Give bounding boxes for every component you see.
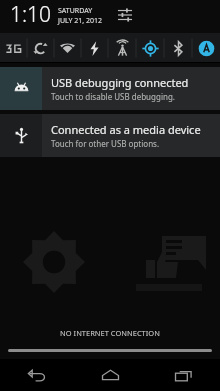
staticText: 1:10: [10, 0, 52, 29]
button[interactable]: USB debugging: [0, 67, 220, 110]
button[interactable]: USB connection: [0, 114, 220, 157]
button[interactable]: Auto rotate: [192, 33, 220, 63]
staticText: USB debugging connected: [51, 75, 189, 90]
button[interactable]: Sync: [27, 33, 54, 63]
button[interactable]: Recent apps: [147, 359, 220, 391]
staticText: JULY 21, 2012: [58, 16, 102, 26]
staticText: Touch to disable USB debugging.: [51, 91, 175, 102]
other: USB debugging: [0, 67, 42, 110]
button[interactable]: Back: [0, 359, 74, 391]
staticText: SATURDAY: [58, 6, 93, 16]
button[interactable]: Hotspot: [108, 33, 136, 63]
staticText: Touch for other USB options.: [51, 138, 160, 149]
button[interactable]: Close notification shade: [8, 349, 212, 352]
staticText: NO INTERNET CONNECTION: [60, 328, 160, 338]
button[interactable]: Mobile data: [0, 33, 27, 63]
staticText: Connected as a media device: [51, 122, 201, 137]
other: USB connection: [0, 114, 42, 157]
button[interactable]: Quick settings: [112, 2, 138, 28]
button[interactable]: Battery: [81, 33, 108, 63]
button[interactable]: Home: [74, 359, 147, 391]
button[interactable]: Wi-Fi: [54, 33, 81, 63]
button[interactable]: Bluetooth: [164, 33, 192, 63]
button[interactable]: Location: [136, 33, 164, 63]
